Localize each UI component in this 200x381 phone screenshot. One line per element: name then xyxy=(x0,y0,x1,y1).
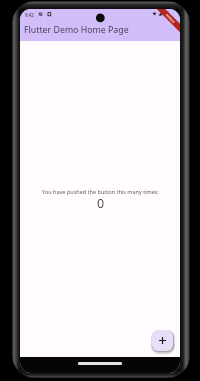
button[interactable]: Increment xyxy=(152,330,173,351)
staticText: 0 xyxy=(97,195,105,212)
staticText: Flutter Demo Home Page xyxy=(24,24,129,36)
staticText: DEBUG xyxy=(165,13,176,24)
staticText: You have pushed the button this many tim… xyxy=(42,188,159,195)
staticText: 9:42 xyxy=(25,12,34,18)
